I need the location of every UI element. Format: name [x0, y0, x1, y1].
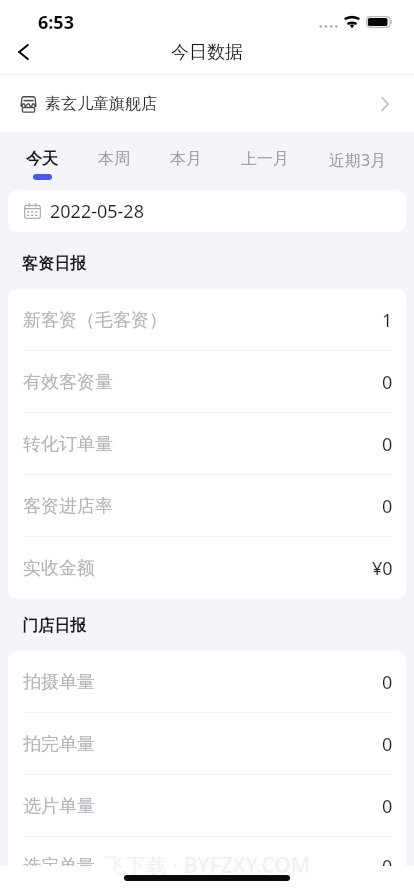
staticText: 客资进店率	[23, 495, 113, 518]
button[interactable]: 上一月	[241, 132, 289, 180]
button[interactable]: 拍完单量	[8, 713, 406, 775]
staticText: 选定单量	[23, 855, 95, 878]
staticText: 0	[382, 854, 393, 879]
button[interactable]: 选定单量	[8, 837, 406, 896]
staticText: 拍完单量	[23, 733, 95, 756]
button[interactable]: 本周	[98, 132, 130, 180]
staticText: 上一月	[241, 149, 289, 169]
staticText: 0	[382, 670, 393, 695]
button[interactable]: 拍摄单量	[8, 651, 406, 713]
staticText: 0	[382, 794, 393, 819]
button[interactable]: 选片单量	[8, 775, 406, 837]
staticText: 1	[382, 308, 393, 333]
button[interactable]: 新客资（毛客资）	[8, 289, 406, 351]
staticText: 本周	[98, 149, 130, 169]
staticText: 转化订单量	[23, 433, 113, 456]
staticText: 今日数据	[171, 41, 243, 64]
staticText: 门店日报	[22, 616, 86, 636]
button[interactable]: Open store	[374, 93, 396, 115]
staticText: 实收金额	[23, 557, 95, 580]
button[interactable]: 素玄儿童旗舰店	[0, 75, 414, 132]
staticText: 0	[382, 732, 393, 757]
button[interactable]: 客资进店率	[8, 475, 406, 537]
staticText: 6:53	[38, 10, 74, 35]
staticText: 近期3月	[329, 149, 387, 171]
button[interactable]: 转化订单量	[8, 413, 406, 475]
button[interactable]: Back	[0, 39, 46, 65]
staticText: 0	[382, 432, 393, 457]
staticText: 选片单量	[23, 795, 95, 818]
button[interactable]: 实收金额	[8, 537, 406, 599]
staticText: 0	[382, 494, 393, 519]
staticText: 今天	[26, 149, 58, 169]
staticText: 拍摄单量	[23, 671, 95, 694]
staticText: 新客资（毛客资）	[23, 309, 167, 332]
button[interactable]: 近期3月	[329, 132, 387, 182]
staticText: 2022-05-28	[50, 199, 144, 224]
staticText: ¥0	[372, 556, 393, 581]
staticText: 素玄儿童旗舰店	[45, 94, 157, 114]
staticText: 飞下载 · BYFZXY.COM	[104, 851, 310, 880]
staticText: 有效客资量	[23, 371, 113, 394]
staticText: 客资日报	[22, 254, 86, 274]
staticText: 本月	[170, 149, 202, 169]
button[interactable]: 今天	[26, 132, 58, 180]
button[interactable]: 有效客资量	[8, 351, 406, 413]
button[interactable]: 2022-05-28	[8, 190, 406, 232]
staticText: 0	[382, 370, 393, 395]
button[interactable]: 本月	[170, 132, 202, 180]
